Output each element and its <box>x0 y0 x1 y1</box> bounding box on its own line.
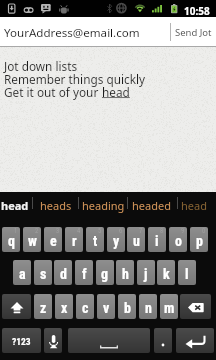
button[interactable]: heading <box>79 192 128 214</box>
button[interactable]: c <box>76 294 94 319</box>
button[interactable]: head <box>0 192 33 214</box>
button[interactable] <box>154 328 172 353</box>
staticText: y <box>113 233 120 249</box>
staticText: ?123 <box>12 336 31 347</box>
staticText: m <box>164 300 175 316</box>
staticText: c <box>82 300 89 316</box>
staticText: a <box>19 266 26 282</box>
button[interactable]: y <box>107 227 125 252</box>
staticText: head <box>181 198 207 213</box>
staticText: 2 <box>35 227 39 235</box>
staticText: headed <box>132 198 171 213</box>
button[interactable]: u <box>127 227 145 252</box>
staticText: heads <box>40 198 72 213</box>
button[interactable]: x <box>55 294 73 319</box>
button[interactable]: g <box>96 260 114 285</box>
button[interactable]: q <box>2 227 20 252</box>
button[interactable]: e <box>44 227 62 252</box>
button[interactable]: i <box>148 227 166 252</box>
button[interactable]: a <box>13 260 31 285</box>
staticText: f <box>82 266 87 282</box>
button[interactable]: m <box>160 294 178 319</box>
staticText: e <box>50 233 57 249</box>
staticText: head <box>102 84 130 100</box>
button[interactable]: w <box>23 227 41 252</box>
staticText: Send Jot <box>175 26 212 39</box>
staticText: z <box>40 300 47 316</box>
button[interactable]: head <box>178 192 216 214</box>
button[interactable]: Shift <box>2 294 31 319</box>
staticText: o <box>175 233 182 249</box>
staticText: 10:58 <box>184 4 210 18</box>
button[interactable]: heads <box>37 192 80 214</box>
button[interactable]: t <box>86 227 104 252</box>
staticText: 4 <box>77 227 81 235</box>
staticText: Get it out of your <box>4 84 102 100</box>
button[interactable]: Voice input <box>44 328 62 353</box>
button[interactable]: ?123 <box>2 328 41 353</box>
staticText: 8 <box>160 227 164 235</box>
button[interactable]: k <box>157 260 175 285</box>
staticText: 3 <box>56 227 60 235</box>
button[interactable]: p <box>190 227 208 252</box>
button[interactable]: n <box>139 294 157 319</box>
staticText: t <box>93 233 98 249</box>
button[interactable]: s <box>34 260 52 285</box>
staticText: 9 <box>181 227 185 235</box>
staticText: b <box>124 300 131 316</box>
button[interactable]: Send Jot <box>170 17 216 48</box>
button[interactable]: j <box>137 260 155 285</box>
staticText: u <box>133 233 140 249</box>
button[interactable]: Enter <box>176 328 214 353</box>
staticText: i <box>155 233 159 249</box>
button[interactable]: o <box>169 227 187 252</box>
staticText: r <box>72 233 77 249</box>
staticText: l <box>185 266 189 282</box>
staticText: k <box>163 266 170 282</box>
staticText: q <box>8 233 15 249</box>
button[interactable]: b <box>118 294 136 319</box>
button[interactable] <box>68 328 150 353</box>
staticText: n <box>145 300 152 316</box>
staticText: g <box>101 266 109 282</box>
staticText: Jot down lists <box>4 58 78 74</box>
staticText: v <box>103 300 110 316</box>
staticText: YourAddress@email.com <box>4 25 140 41</box>
staticText: 1 <box>14 227 18 235</box>
staticText: h <box>122 266 129 282</box>
button[interactable]: d <box>54 260 72 285</box>
staticText: 0 <box>202 227 206 235</box>
button[interactable]: z <box>34 294 52 319</box>
button[interactable]: v <box>97 294 115 319</box>
button[interactable]: headed <box>129 192 179 214</box>
staticText: 6 <box>119 227 123 235</box>
staticText: x <box>61 300 68 316</box>
staticText: w <box>28 233 37 249</box>
button[interactable]: Backspace <box>180 294 211 319</box>
button[interactable]: l <box>178 260 196 285</box>
button[interactable]: h <box>116 260 134 285</box>
staticText: 5 <box>98 227 102 235</box>
staticText: heading <box>82 198 125 213</box>
staticText: s <box>40 266 47 282</box>
button[interactable]: r <box>65 227 83 252</box>
staticText: p <box>196 233 203 249</box>
staticText: d <box>60 266 67 282</box>
staticText: 7 <box>139 227 143 235</box>
staticText: j <box>144 266 148 282</box>
staticText: Remember things quickly <box>4 71 146 87</box>
staticText: head <box>1 198 29 213</box>
button[interactable]: f <box>75 260 93 285</box>
